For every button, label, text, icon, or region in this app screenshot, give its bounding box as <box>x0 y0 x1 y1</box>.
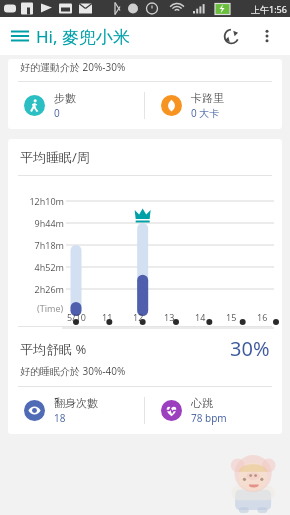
staticText: Hi, 麥兜小米 <box>36 25 130 48</box>
staticText: 平均睡眠/周 <box>20 148 90 166</box>
staticText: 0 大卡 <box>191 106 220 120</box>
button[interactable]: Menu <box>6 22 34 50</box>
button[interactable]: 翻身次數 <box>8 387 144 434</box>
button[interactable]: 卡路里 <box>145 82 282 129</box>
staticText: 12 <box>133 311 144 323</box>
staticText: 4h52m <box>34 261 64 273</box>
staticText: 9h44m <box>34 217 64 229</box>
staticText: 78 bpm <box>191 411 227 425</box>
staticText: 30% <box>230 335 270 362</box>
staticText: 13 <box>164 311 175 323</box>
staticText: 0 <box>54 106 60 120</box>
staticText: 5/10 <box>67 311 86 323</box>
button[interactable]: 心跳 <box>145 387 282 434</box>
staticText: 平均舒眠 % <box>20 340 87 358</box>
staticText: 卡路里 <box>191 91 224 105</box>
button[interactable]: Refresh <box>216 21 246 51</box>
staticText: 翻身次數 <box>54 396 98 410</box>
staticText: 好的運動介於 20%-30% <box>20 60 126 74</box>
button[interactable]: 步數 <box>8 82 144 129</box>
staticText: (Time) <box>37 302 64 314</box>
staticText: 14 <box>195 311 206 323</box>
button[interactable]: More options <box>252 21 282 51</box>
staticText: 16 <box>257 311 268 323</box>
staticText: 11 <box>102 311 113 323</box>
staticText: 心跳 <box>191 396 213 410</box>
staticText: 7h18m <box>34 239 64 251</box>
staticText: 2h26m <box>34 283 64 295</box>
staticText: 上午1:56 <box>251 3 287 15</box>
staticText: 步數 <box>54 91 76 105</box>
staticText: 15 <box>226 311 237 323</box>
staticText: 好的睡眠介於 30%-40% <box>20 364 126 378</box>
staticText: 18 <box>54 411 66 425</box>
staticText: 12h10m <box>29 195 64 207</box>
